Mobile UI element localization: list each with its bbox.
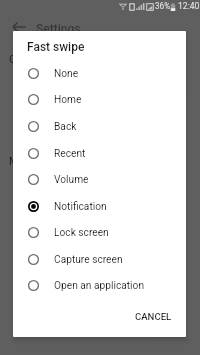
staticText: CANCEL	[135, 311, 172, 322]
button[interactable]: Back	[13, 113, 186, 140]
staticText: Capture screen	[54, 254, 123, 266]
button[interactable]: CANCEL	[127, 306, 180, 327]
button[interactable]: Recent	[13, 140, 186, 167]
button[interactable]: Capture screen	[13, 246, 186, 273]
staticText: G	[9, 53, 17, 66]
button[interactable]: Notification	[13, 193, 186, 220]
staticText: Lock screen	[54, 227, 109, 239]
staticText: Settings	[36, 22, 81, 36]
button[interactable]: Navigate up	[11, 21, 27, 37]
staticText: None	[54, 68, 79, 80]
staticText: Back	[54, 121, 77, 133]
staticText: 36%	[155, 1, 171, 11]
button[interactable]: Volume	[13, 166, 186, 193]
staticText: Fast swipe	[27, 40, 85, 54]
button[interactable]: Lock screen	[13, 219, 186, 246]
button[interactable]: Open an application	[13, 272, 186, 299]
staticText: Home	[54, 94, 82, 106]
staticText: Open an application	[54, 280, 145, 292]
staticText: Notification	[54, 201, 107, 213]
staticText: M	[9, 155, 19, 168]
staticText: Volume	[54, 174, 89, 186]
staticText: Recent	[54, 148, 86, 160]
button[interactable]: Home	[13, 86, 186, 113]
button[interactable]: None	[13, 60, 186, 87]
staticText: 12:40	[178, 1, 200, 11]
